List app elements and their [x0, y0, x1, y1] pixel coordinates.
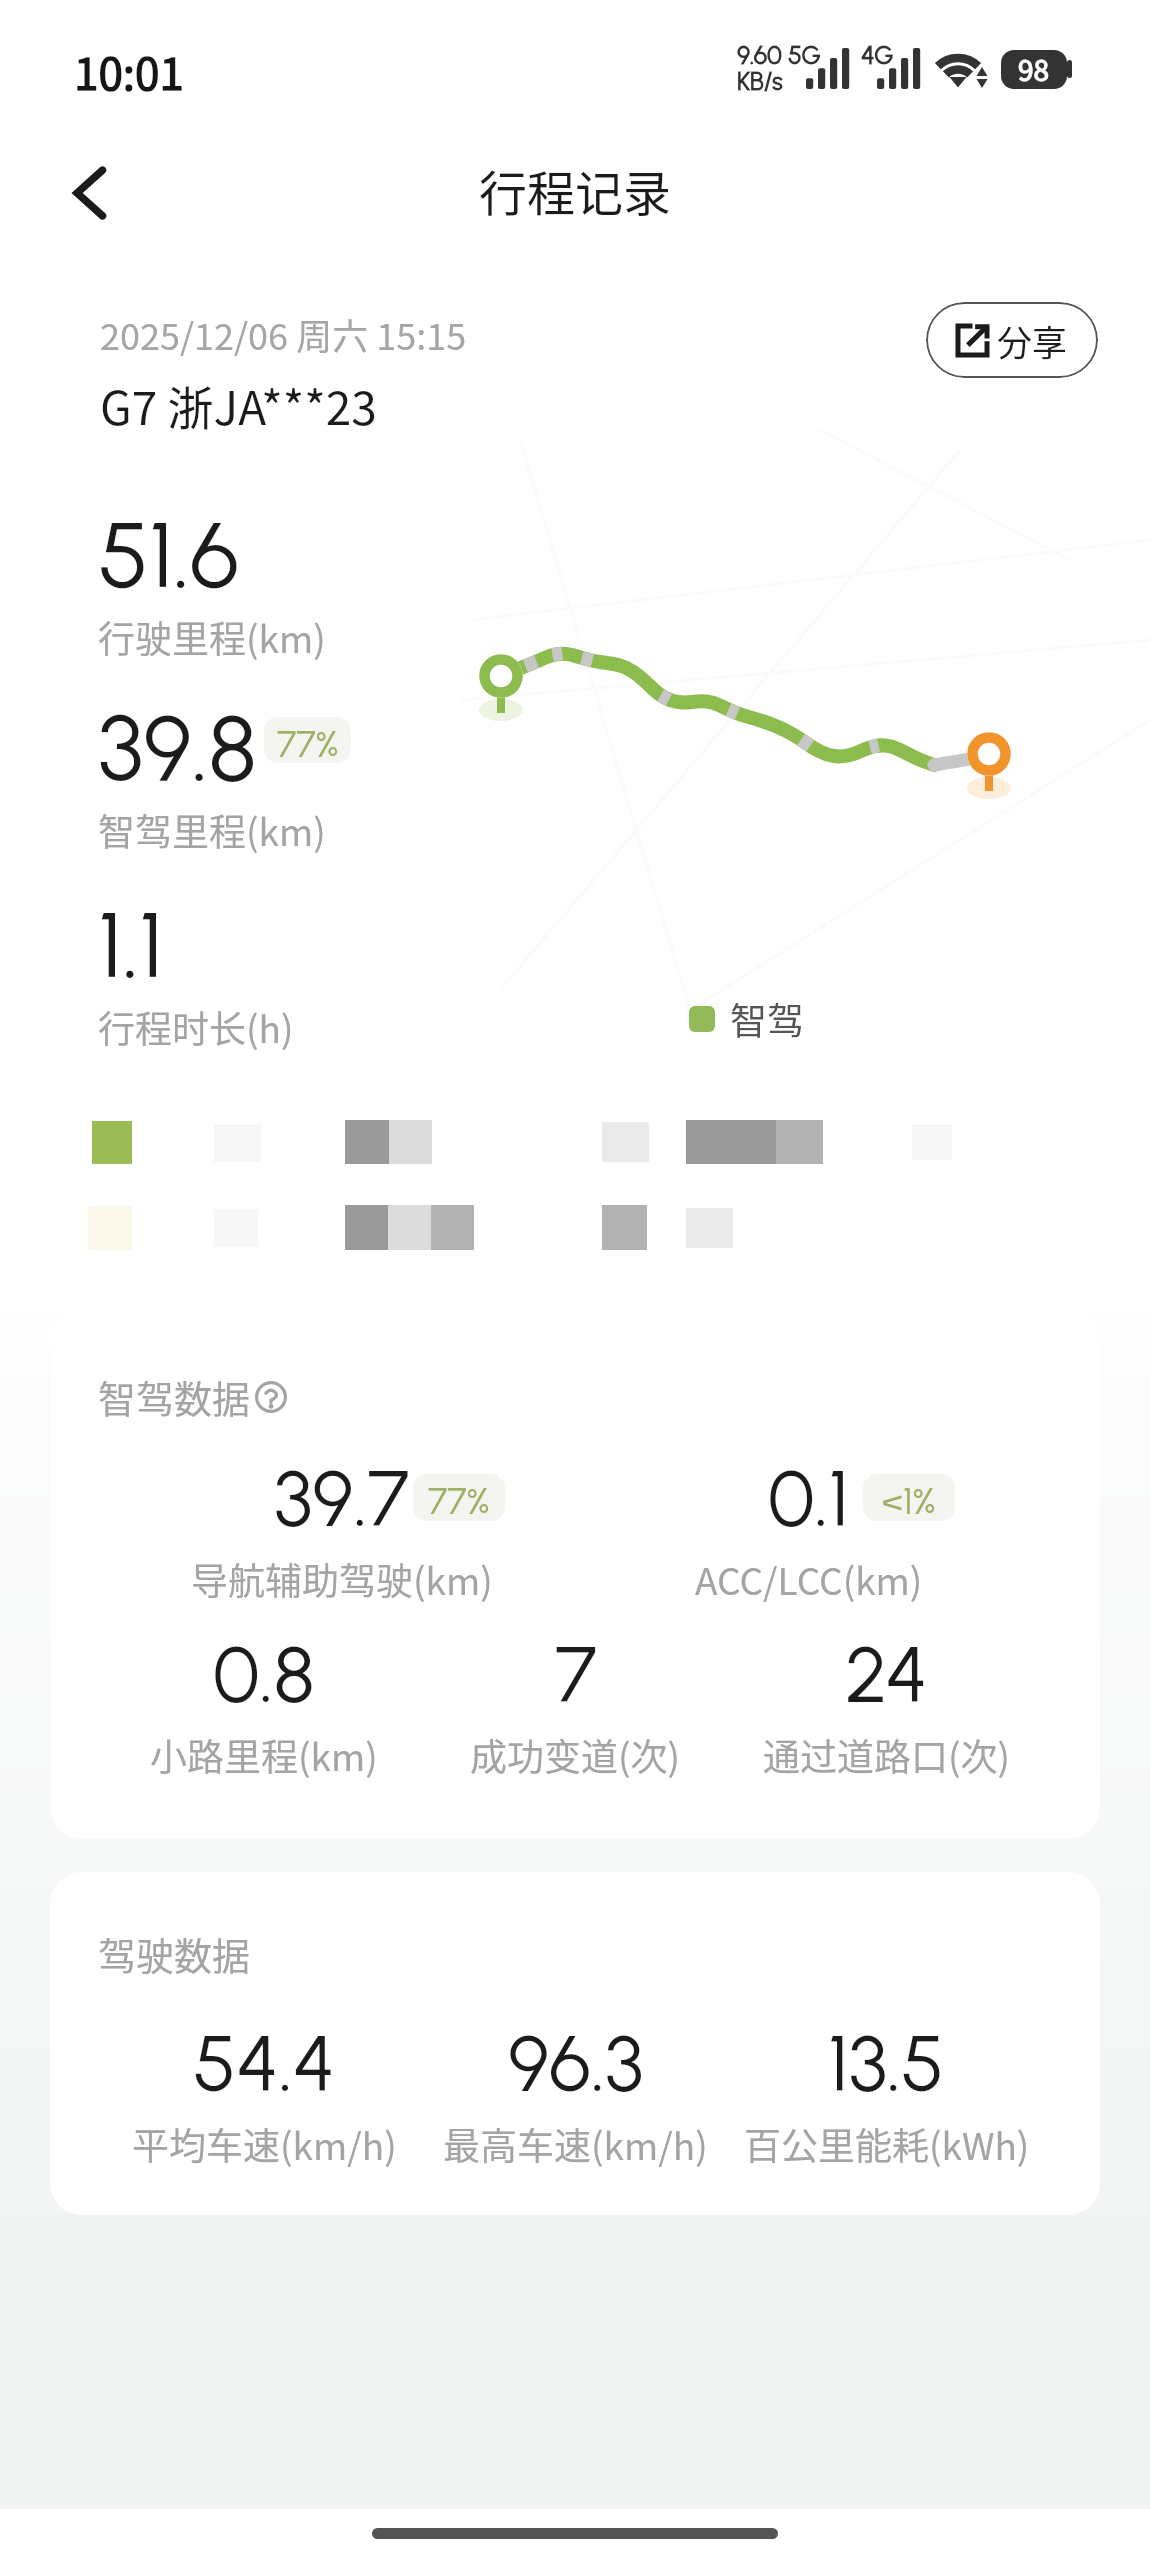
- staticText: 成功变道(次): [470, 1728, 681, 1782]
- staticText: 行程记录: [479, 155, 672, 225]
- staticText: 驾驶数据: [98, 1926, 251, 1981]
- staticText: 2025/12/06 周六 15:15: [100, 308, 467, 360]
- staticText: 智驾数据: [98, 1369, 251, 1424]
- staticText: 1.1: [98, 890, 164, 1000]
- staticText: 13.5: [828, 2016, 945, 2110]
- staticText: 54.4: [193, 2016, 336, 2110]
- staticText: 10:01: [74, 39, 184, 103]
- staticText: 24: [845, 1627, 928, 1721]
- staticText: <1%: [882, 1480, 936, 1521]
- staticText: 39.8: [98, 693, 257, 803]
- staticText: 5G: [788, 40, 821, 70]
- button[interactable]: 智驾数据 help: [98, 1369, 287, 1424]
- staticText: 7: [555, 1627, 597, 1721]
- staticText: KB/s: [737, 66, 783, 96]
- staticText: 导航辅助驾驶(km): [191, 1552, 493, 1606]
- staticText: 98: [1018, 50, 1050, 88]
- staticText: 51.6: [98, 500, 240, 610]
- staticText: 9.60: [737, 40, 782, 70]
- staticText: 0.1: [768, 1451, 850, 1545]
- staticText: 96.3: [508, 2016, 644, 2110]
- staticText: G7 浙JA***23: [100, 372, 377, 439]
- button[interactable]: Back: [43, 147, 135, 239]
- staticText: 4G: [861, 40, 894, 70]
- staticText: 77%: [277, 723, 339, 763]
- staticText: 最高车速(km/h): [443, 2117, 708, 2171]
- staticText: 智驾里程(km): [98, 803, 326, 857]
- staticText: 行驶里程(km): [98, 610, 326, 664]
- button[interactable]: 分享: [926, 302, 1098, 378]
- staticText: 行程时长(h): [98, 1000, 294, 1054]
- staticText: 智驾: [730, 992, 804, 1046]
- staticText: 39.7: [274, 1451, 410, 1545]
- staticText: 77%: [428, 1480, 490, 1521]
- staticText: 平均车速(km/h): [132, 2117, 397, 2171]
- staticText: 分享: [997, 315, 1068, 366]
- staticText: 小路里程(km): [150, 1728, 378, 1782]
- staticText: 0.8: [213, 1627, 315, 1721]
- staticText: ACC/LCC(km): [695, 1552, 923, 1606]
- staticText: 通过道路口(次): [763, 1728, 1011, 1782]
- staticText: 百公里能耗(kWh): [744, 2117, 1030, 2171]
